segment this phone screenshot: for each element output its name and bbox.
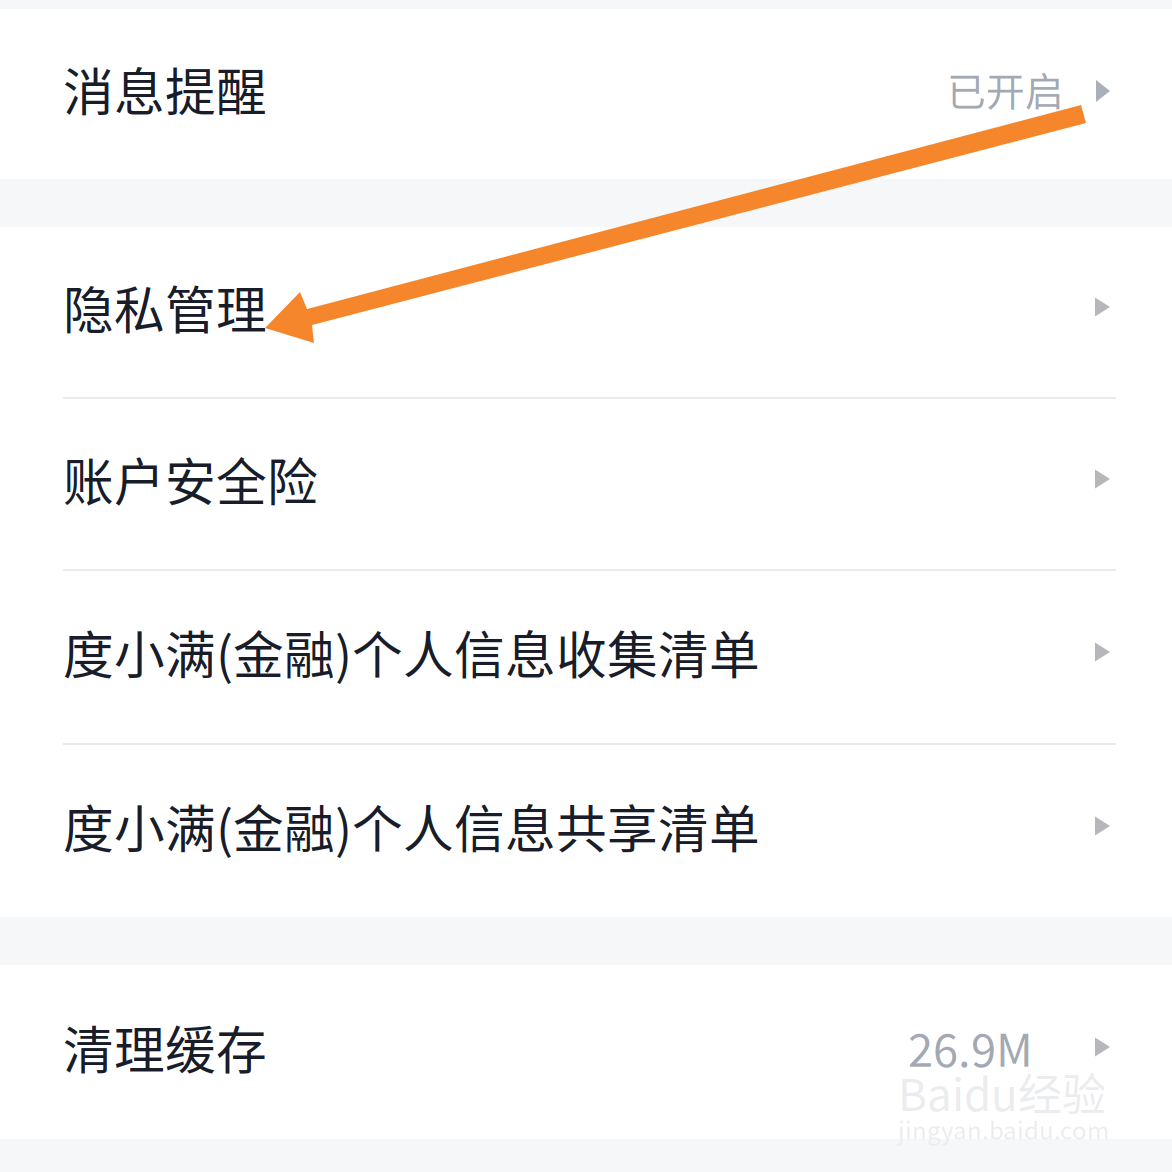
staticText: 清理缓存 bbox=[63, 1010, 267, 1084]
button[interactable]: 度小满(金融)个人信息收集清单 bbox=[0, 571, 1172, 743]
staticText: 账户安全险 bbox=[63, 442, 318, 516]
staticText: Baidu经验 bbox=[898, 1060, 1106, 1124]
staticText: jingyan.baidu.com bbox=[898, 1112, 1109, 1146]
button[interactable]: 消息提醒 bbox=[0, 9, 1172, 179]
staticText: 度小满(金融)个人信息共享清单 bbox=[63, 789, 760, 863]
staticText: 度小满(金融)个人信息收集清单 bbox=[63, 615, 760, 689]
staticText: 消息提醒 bbox=[63, 52, 267, 126]
staticText: 26.9M bbox=[908, 1014, 1033, 1080]
staticText: 隐私管理 bbox=[63, 270, 267, 344]
staticText: 已开启 bbox=[947, 61, 1064, 117]
button[interactable]: 账户安全险 bbox=[0, 399, 1172, 569]
button[interactable]: 隐私管理 bbox=[0, 227, 1172, 397]
button[interactable]: 度小满(金融)个人信息共享清单 bbox=[0, 745, 1172, 917]
button[interactable]: 清理缓存 bbox=[0, 965, 1172, 1139]
